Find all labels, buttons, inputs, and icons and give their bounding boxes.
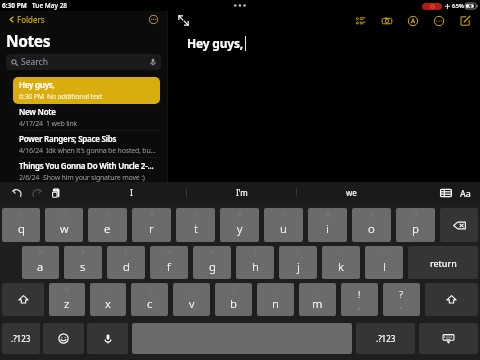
button[interactable]: New note	[458, 14, 471, 27]
button[interactable]: I'm	[187, 182, 296, 203]
button[interactable]: ;	[257, 283, 294, 316]
button[interactable]: Hey guys,	[13, 77, 160, 104]
staticText: y	[237, 221, 243, 237]
staticText: Power Rangers; Space Sibs	[19, 133, 117, 144]
button[interactable]: &	[150, 246, 188, 279]
button[interactable]: Undo	[11, 186, 24, 199]
staticText: !	[358, 288, 361, 301]
button[interactable]: Folders	[8, 12, 45, 27]
button[interactable]: ?	[383, 283, 420, 316]
staticText: r	[149, 221, 154, 237]
staticText: 0	[414, 210, 418, 219]
button[interactable]: we	[297, 182, 406, 203]
button[interactable]: Shift	[425, 283, 478, 316]
button[interactable]: Insert table	[439, 186, 453, 200]
button[interactable]: Emoji	[43, 323, 84, 354]
staticText: t	[194, 221, 198, 237]
staticText: s	[80, 259, 86, 275]
staticText: l	[383, 259, 386, 275]
staticText: Folders	[17, 14, 45, 25]
button[interactable]: 6	[220, 208, 259, 242]
staticText: Tue May 28	[32, 1, 68, 10]
staticText: Idk when it's gonna be hosted, bu...	[46, 146, 156, 156]
button[interactable]: Camera	[380, 14, 393, 27]
staticText: j	[297, 259, 300, 275]
button[interactable]: 5	[176, 208, 215, 242]
staticText: u	[280, 221, 287, 237]
staticText: 7	[282, 210, 286, 219]
button[interactable]: *	[193, 246, 231, 279]
button[interactable]: return	[408, 246, 478, 279]
button[interactable]: '	[322, 246, 360, 279]
button[interactable]: Aa	[459, 187, 472, 199]
button[interactable]: 7	[264, 208, 303, 242]
staticText: 4	[150, 210, 154, 219]
button[interactable]: 4	[132, 208, 171, 242]
button[interactable]: 1	[2, 208, 40, 242]
button[interactable]: Shift	[2, 283, 44, 316]
button[interactable]: Backspace	[440, 208, 478, 242]
button[interactable]: More options	[148, 14, 159, 25]
button[interactable]: -	[90, 283, 126, 316]
button[interactable]: Redo	[30, 186, 43, 199]
button[interactable]: :	[299, 283, 336, 316]
button[interactable]: 3	[88, 208, 127, 242]
button[interactable]: "	[365, 246, 403, 279]
staticText: b	[230, 296, 237, 312]
button[interactable]: .?123	[2, 323, 40, 354]
staticText: z	[64, 296, 70, 312]
button[interactable]: More options	[432, 14, 445, 27]
button[interactable]: Paste	[49, 186, 62, 199]
staticText: (	[254, 248, 256, 257]
staticText: w	[60, 221, 69, 237]
staticText: Show him your signature move :)	[43, 173, 145, 183]
staticText: i	[326, 221, 329, 237]
button[interactable]: )	[279, 246, 317, 279]
button[interactable]: Multitasking controls	[232, 1, 248, 10]
button[interactable]: 8	[308, 208, 347, 242]
button[interactable]: Dictation	[87, 323, 128, 354]
button[interactable]: .?123	[356, 323, 415, 354]
staticText: e	[104, 221, 111, 237]
button[interactable]: Power Rangers; Space Sibs	[13, 131, 160, 158]
staticText: c	[147, 296, 153, 312]
button[interactable]: Expand note	[177, 14, 190, 27]
button[interactable]: %	[49, 283, 85, 316]
staticText: return	[430, 257, 457, 269]
button[interactable]: Checklist	[354, 14, 367, 27]
button[interactable]: I	[76, 182, 186, 203]
staticText: a	[37, 259, 44, 275]
staticText: 9	[370, 210, 374, 219]
button[interactable]: New Note	[13, 104, 160, 131]
button[interactable]: Things You Gonna Do With Uncle 2-...	[13, 158, 160, 185]
button[interactable]: Search	[6, 54, 161, 70]
button[interactable]: Hide keyboard	[419, 323, 478, 354]
button[interactable]: 9	[352, 208, 391, 242]
staticText: 4/17/24	[19, 119, 43, 129]
button[interactable]: $	[107, 246, 145, 279]
button[interactable]: #	[64, 246, 102, 279]
button[interactable]: (	[236, 246, 274, 279]
staticText: No additional text	[47, 92, 103, 102]
button[interactable]: !	[341, 283, 378, 316]
button[interactable]: =	[173, 283, 210, 316]
button[interactable]: 0	[396, 208, 435, 242]
staticText: 3	[106, 210, 110, 219]
button[interactable]: +	[131, 283, 168, 316]
button[interactable]: @	[22, 246, 59, 279]
button[interactable]: /	[215, 283, 252, 316]
staticText: New Note	[19, 106, 56, 117]
button[interactable]: 2	[45, 208, 83, 242]
staticText: f	[167, 259, 171, 275]
button[interactable]: Markup	[406, 14, 419, 27]
staticText: Aa	[460, 187, 471, 199]
staticText: ,	[358, 300, 361, 311]
staticText: p	[412, 221, 419, 237]
staticText: I	[130, 187, 133, 198]
